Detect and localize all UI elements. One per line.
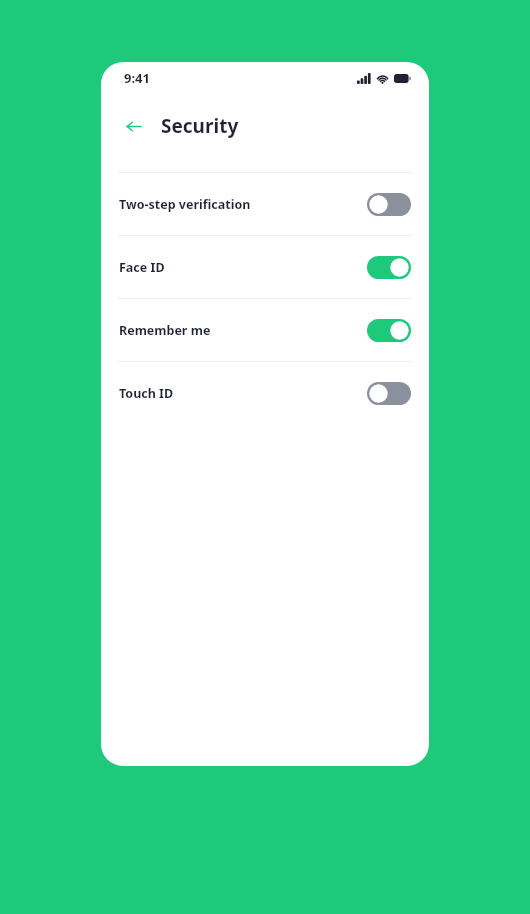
staticText: Security	[161, 113, 239, 139]
staticText: Remember me	[119, 322, 367, 339]
button[interactable]: Back	[119, 112, 147, 140]
staticText: 9:41	[124, 69, 150, 87]
button[interactable]: Touch ID	[101, 362, 429, 424]
button[interactable]: Face ID	[101, 236, 429, 298]
staticText: Two-step verification	[119, 196, 367, 213]
button[interactable]: Remember me	[101, 299, 429, 361]
staticText: Face ID	[119, 259, 367, 276]
staticText: Touch ID	[119, 385, 367, 402]
button[interactable]: Two-step verification	[101, 173, 429, 235]
